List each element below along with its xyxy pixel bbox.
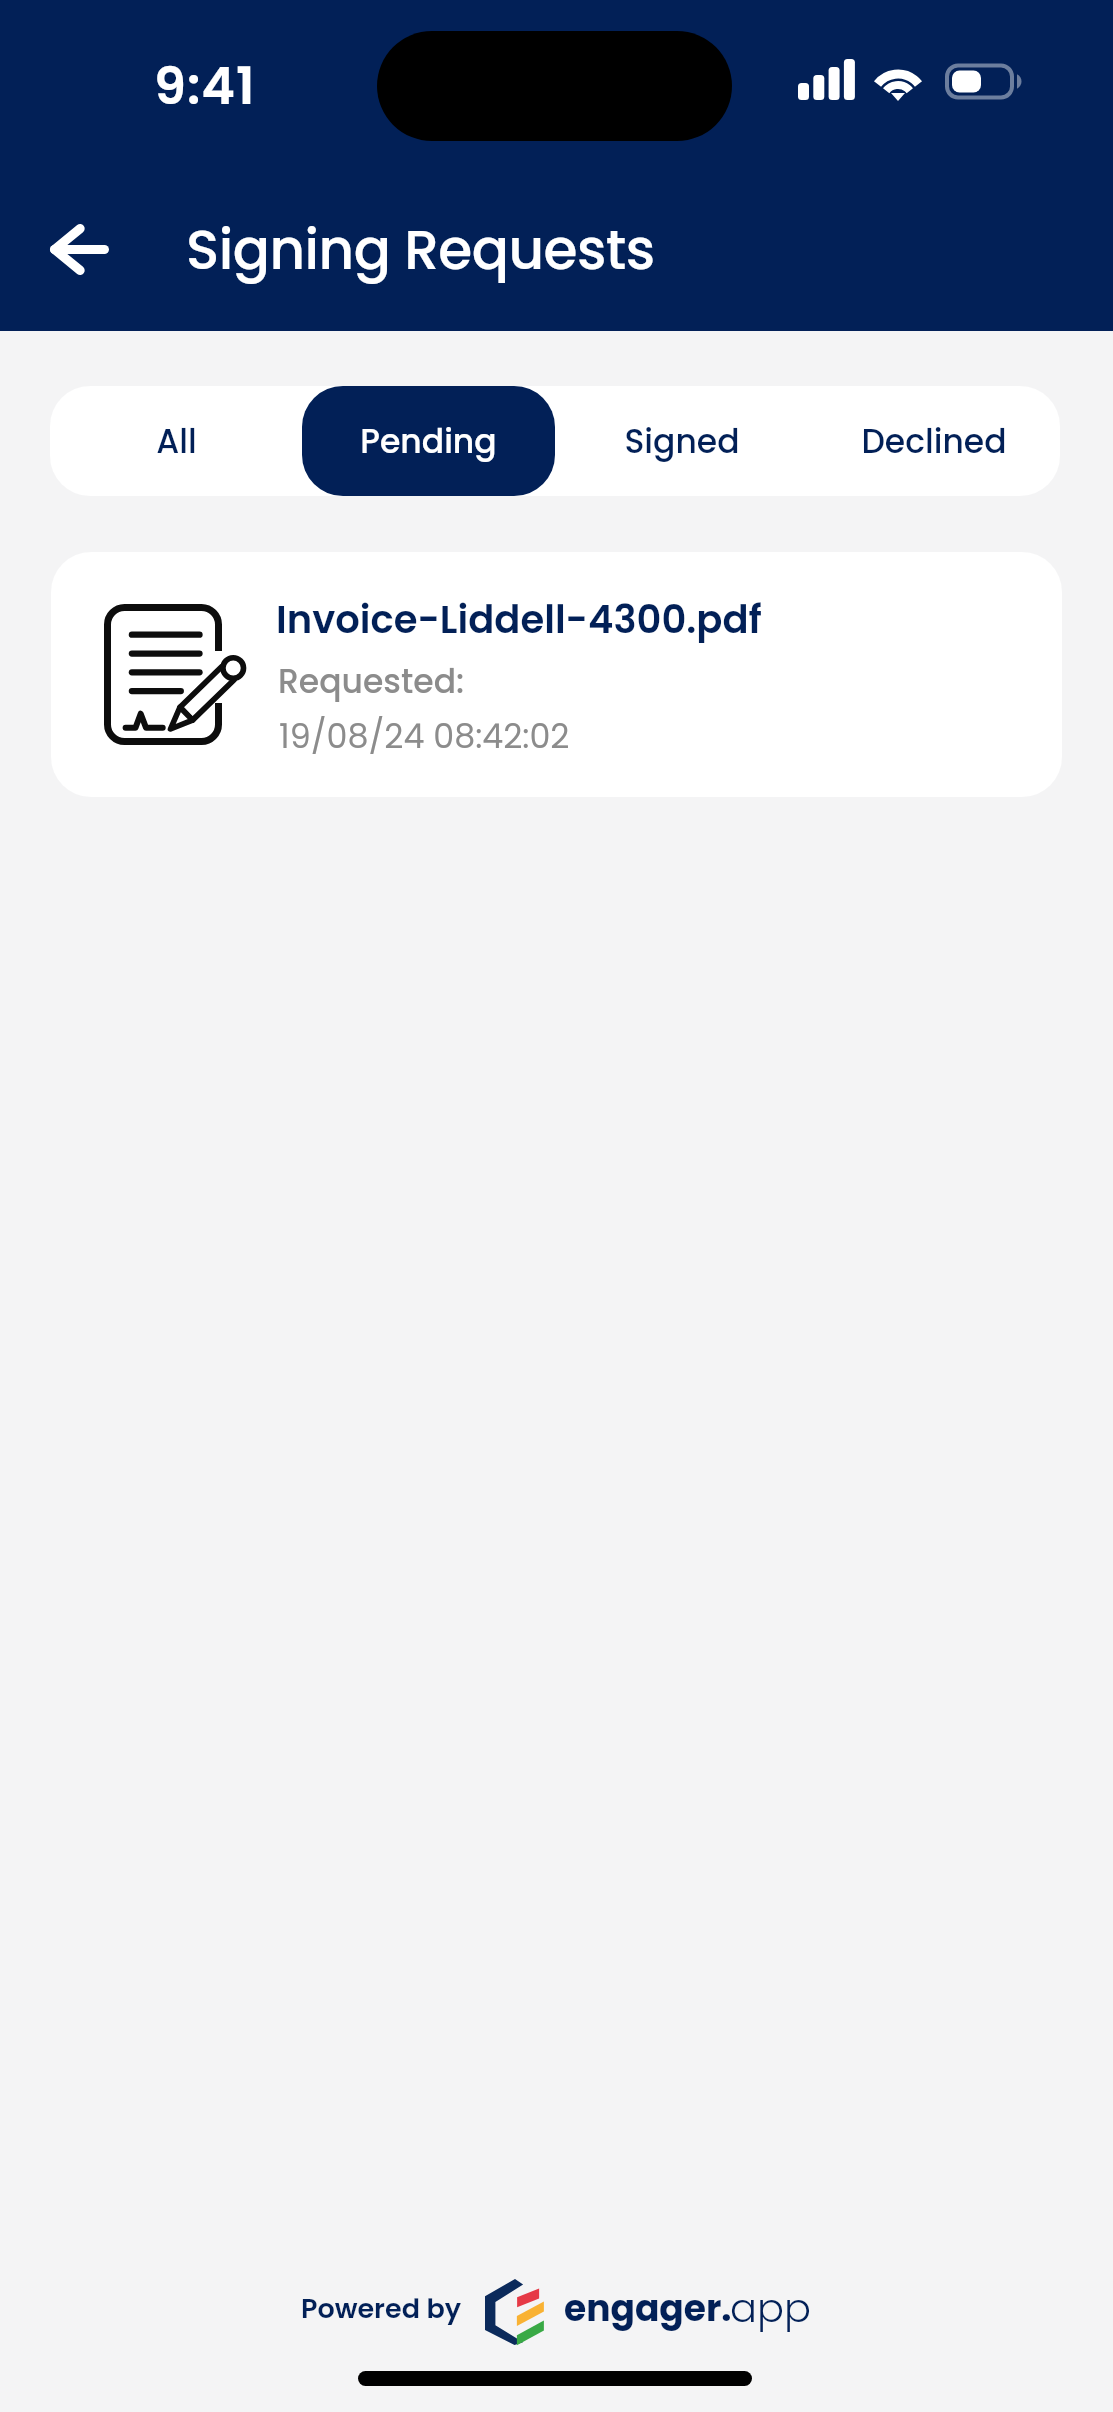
staticText: app xyxy=(730,2280,811,2336)
button[interactable]: Invoice-Liddell-4300.pdf xyxy=(51,552,1062,797)
staticText: Invoice-Liddell-4300.pdf xyxy=(276,593,762,647)
button[interactable]: Signed xyxy=(555,386,808,496)
staticText: Powered by xyxy=(301,2290,462,2328)
staticText: 9:41 xyxy=(154,50,256,121)
button[interactable]: Back xyxy=(18,200,141,299)
button[interactable]: Declined xyxy=(808,386,1060,496)
button[interactable]: All xyxy=(50,386,302,496)
staticText: Declined xyxy=(861,418,1007,464)
staticText: 19/08/24 08:42:02 xyxy=(279,713,570,760)
button[interactable]: Pending xyxy=(302,386,555,496)
staticText: engager. xyxy=(564,2283,732,2333)
staticText: Signed xyxy=(624,418,740,464)
staticText: Signing Requests xyxy=(186,211,655,288)
staticText: All xyxy=(156,418,197,464)
staticText: Pending xyxy=(360,418,497,464)
staticText: Requested: xyxy=(278,658,465,704)
